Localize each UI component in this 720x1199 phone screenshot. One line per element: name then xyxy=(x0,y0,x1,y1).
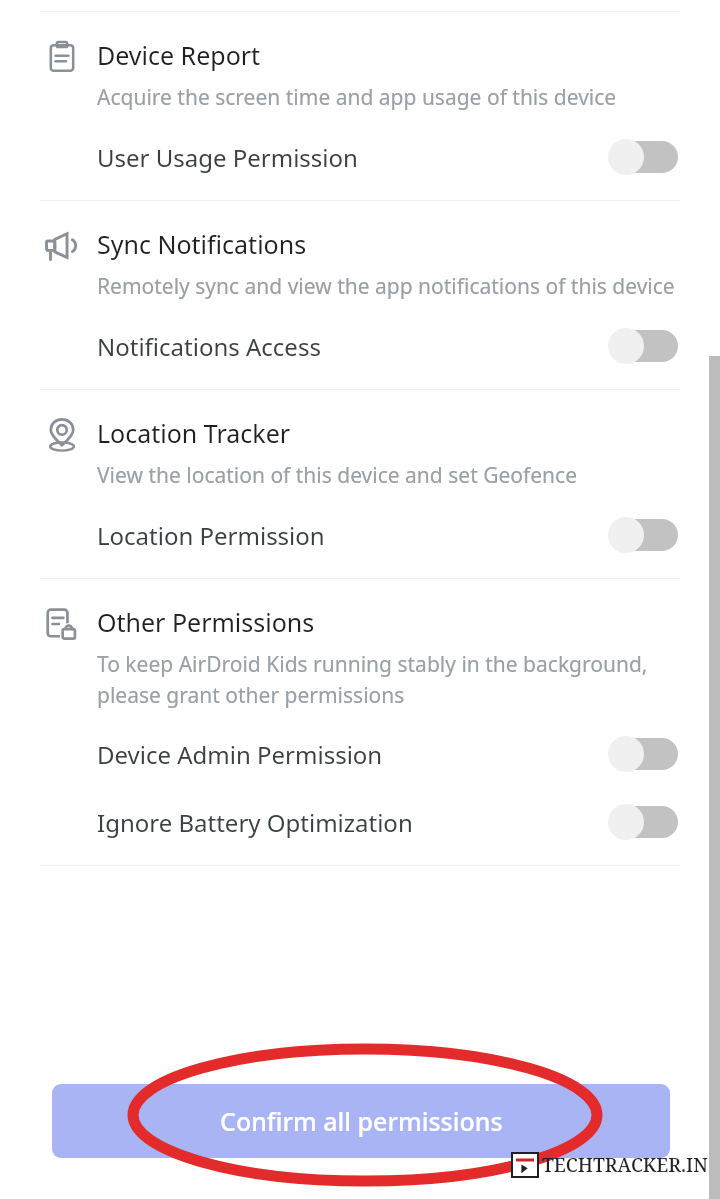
staticText: Notifications Access xyxy=(97,330,608,363)
staticText: Other Permissions xyxy=(97,605,315,639)
staticText: To keep AirDroid Kids running stably in … xyxy=(97,650,680,709)
button[interactable]: Notifications Access xyxy=(0,321,720,371)
staticText: Remotely sync and view the app notificat… xyxy=(97,272,675,301)
button[interactable]: Location Permission xyxy=(0,510,720,560)
staticText: Device Admin Permission xyxy=(97,738,608,771)
staticText: User Usage Permission xyxy=(97,141,608,174)
other: Toggle permission xyxy=(608,328,678,364)
staticText: Acquire the screen time and app usage of… xyxy=(97,83,617,112)
button[interactable]: User Usage Permission xyxy=(0,132,720,182)
button[interactable]: Ignore Battery Optimization xyxy=(0,797,720,847)
staticText: Location Permission xyxy=(97,519,608,552)
staticText: Device Report xyxy=(97,38,261,72)
other: Toggle permission xyxy=(608,804,678,840)
button[interactable]: Confirm all permissions xyxy=(52,1084,670,1158)
staticText: View the location of this device and set… xyxy=(97,461,577,490)
staticText: Confirm all permissions xyxy=(220,1104,503,1138)
staticText: Sync Notifications xyxy=(97,227,307,261)
other: Toggle permission xyxy=(608,139,678,175)
staticText: Location Tracker xyxy=(97,416,291,450)
staticText: Ignore Battery Optimization xyxy=(97,806,608,839)
other: Toggle permission xyxy=(608,736,678,772)
staticText: TECHTRACKER.IN xyxy=(542,1152,708,1178)
other: Toggle permission xyxy=(608,517,678,553)
button[interactable]: Device Admin Permission xyxy=(0,729,720,779)
